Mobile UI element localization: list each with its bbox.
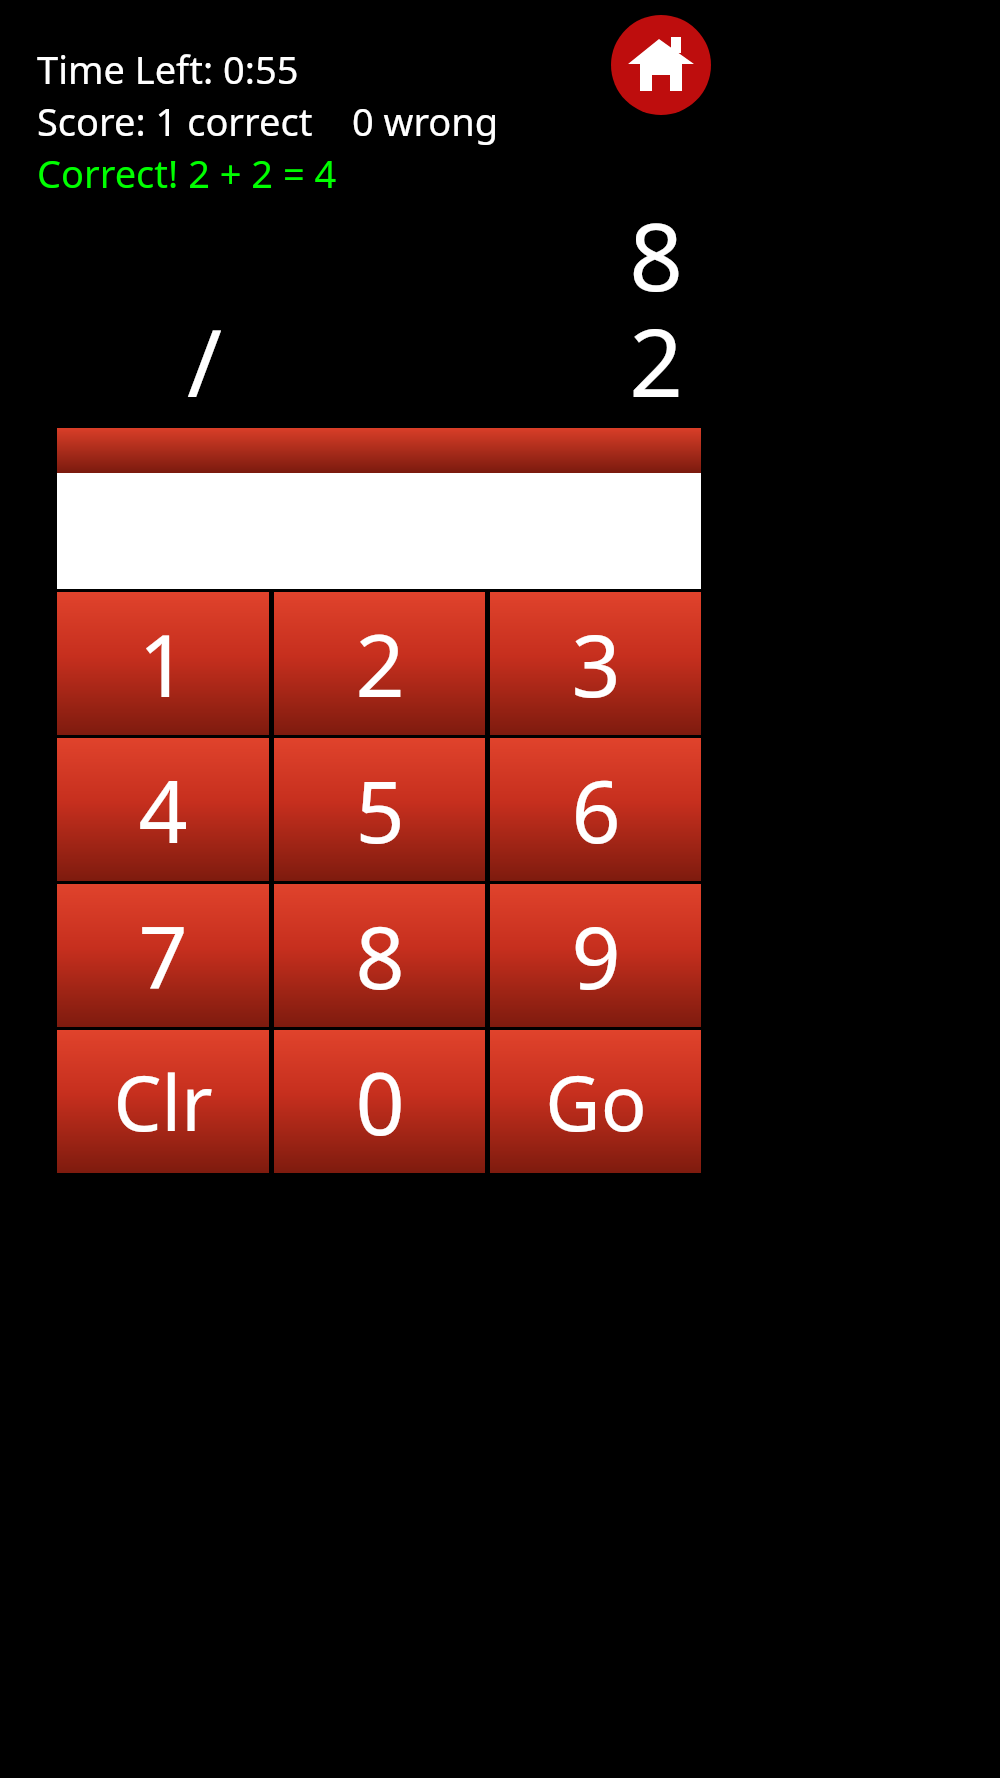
button[interactable] [57,428,701,473]
button[interactable]: 3 [490,592,701,735]
button[interactable]: 0 [274,1030,485,1173]
button[interactable]: 6 [490,738,701,881]
staticText: Time Left: 0:55 [37,43,299,95]
staticText: 4 [138,751,188,868]
button[interactable]: Home [611,15,711,115]
button[interactable]: 2 [274,592,485,735]
staticText: / [94,297,222,425]
staticText: 8 [555,191,683,319]
staticText: 6 [571,751,621,868]
staticText: 5 [355,751,405,868]
staticText: 0 [355,1043,405,1160]
button[interactable]: 4 [57,738,269,881]
staticText: Score: 1 correct 0 wrong [37,95,499,147]
button[interactable]: 8 [274,884,485,1027]
staticText: 9 [571,897,621,1014]
button[interactable]: 7 [57,884,269,1027]
staticText: Clr [113,1050,213,1154]
button[interactable]: 5 [274,738,485,881]
staticText: 7 [138,897,188,1014]
button[interactable]: Clr [57,1030,269,1173]
staticText: 3 [571,605,621,722]
staticText: 2 [355,605,405,722]
staticText: 8 [355,897,405,1014]
staticText: Go [545,1050,647,1154]
button[interactable]: Go [490,1030,701,1173]
button[interactable]: 1 [57,592,269,735]
staticText: 1 [138,605,188,722]
staticText: 2 [555,297,683,425]
button[interactable]: 9 [490,884,701,1027]
staticText: Correct! 2 + 2 = 4 [37,147,337,199]
